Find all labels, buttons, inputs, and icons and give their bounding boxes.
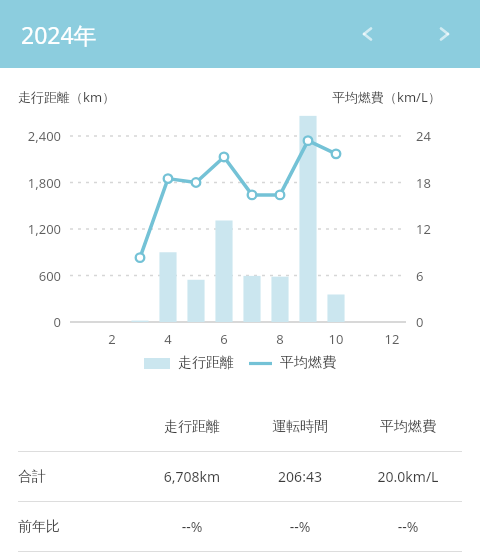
staticText: 12	[416, 220, 446, 238]
staticText: 平均燃費（km/L）	[332, 88, 441, 106]
staticText: 20.0km/L	[354, 467, 462, 486]
staticText: 走行距離	[138, 418, 246, 436]
staticText: --%	[354, 517, 462, 536]
staticText: 6	[416, 267, 446, 285]
staticText: 合計	[18, 468, 138, 486]
staticText: 走行距離	[178, 354, 234, 372]
staticText: 206:43	[246, 467, 354, 486]
staticText: 運転時間	[246, 418, 354, 436]
staticText: 8	[265, 330, 295, 348]
staticText: 6,708km	[138, 467, 246, 486]
staticText: 平均燃費	[354, 418, 462, 436]
button[interactable]: 前年比	[0, 502, 480, 551]
staticText: 24	[416, 127, 446, 145]
staticText: 前年比	[18, 518, 138, 536]
staticText: 0	[416, 313, 446, 331]
staticText: --%	[138, 517, 246, 536]
button[interactable]: 合計	[0, 452, 480, 501]
staticText: 走行距離（km）	[18, 88, 116, 106]
staticText: 2024年	[21, 19, 97, 50]
button[interactable]: 前の年	[346, 13, 388, 55]
staticText: 1,200	[0, 220, 61, 238]
button[interactable]: 次の年	[424, 13, 466, 55]
staticText: 18	[416, 174, 446, 192]
staticText: 6	[209, 330, 239, 348]
staticText: 12	[377, 330, 407, 348]
staticText: 0	[0, 313, 61, 331]
staticText: 2,400	[0, 127, 61, 145]
staticText: 10	[321, 330, 351, 348]
staticText: 平均燃費	[280, 354, 336, 372]
staticText: --%	[246, 517, 354, 536]
staticText: 1,800	[0, 174, 61, 192]
staticText: 4	[153, 330, 183, 348]
staticText: 600	[0, 267, 61, 285]
staticText: 2	[97, 330, 127, 348]
